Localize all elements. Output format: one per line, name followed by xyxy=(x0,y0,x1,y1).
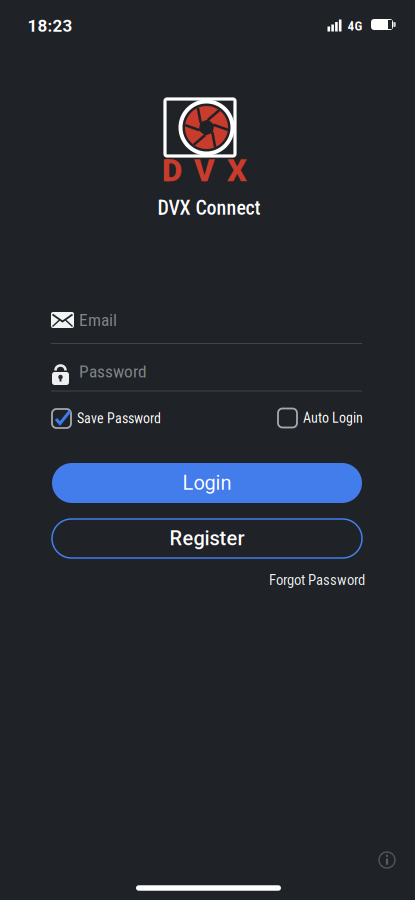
button[interactable] xyxy=(377,850,397,870)
button[interactable]: Register xyxy=(52,519,362,558)
staticText: DVX Connect xyxy=(157,196,260,220)
staticText: Forgot Password xyxy=(269,571,365,589)
staticText: Email xyxy=(79,310,117,330)
staticText: DVX xyxy=(162,152,247,189)
staticText: 18:23 xyxy=(27,16,72,36)
staticText: Auto Login xyxy=(303,410,363,426)
button[interactable]: Auto Login xyxy=(278,407,396,429)
staticText: Password xyxy=(79,361,147,382)
button[interactable]: Password xyxy=(51,352,362,392)
staticText: Login xyxy=(182,471,231,495)
button[interactable]: Login xyxy=(52,463,362,503)
staticText: Register xyxy=(169,527,244,550)
staticText: Save Password xyxy=(77,410,161,427)
button[interactable]: Email xyxy=(51,304,362,344)
staticText: 4G xyxy=(347,18,362,34)
button[interactable]: Save Password xyxy=(52,407,217,429)
button[interactable]: Forgot Password xyxy=(269,571,365,589)
